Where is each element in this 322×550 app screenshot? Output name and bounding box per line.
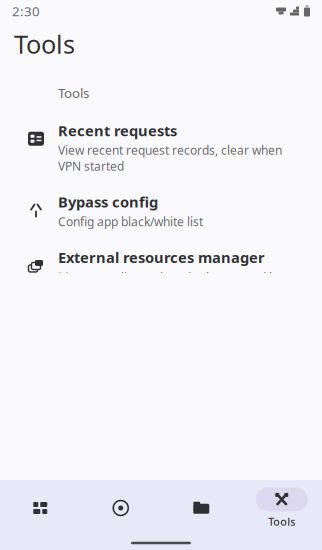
button[interactable]: External resources manager — [0, 238, 322, 310]
staticText: Bypass config — [58, 192, 158, 212]
button[interactable]: Tab — [0, 480, 80, 536]
staticText: Settings — [58, 504, 117, 524]
staticText: 2:30 — [12, 2, 40, 20]
staticText: Manage policy path and rule set used by … — [58, 269, 282, 301]
staticText: Tools — [58, 84, 89, 102]
staticText: Others — [58, 468, 101, 485]
staticText: External resources manager — [58, 247, 265, 267]
button[interactable]: Settings — [0, 495, 322, 535]
button[interactable]: Recent requests — [0, 112, 322, 183]
staticText: Config app black/white list — [58, 213, 203, 229]
staticText: Tools — [268, 514, 295, 529]
button[interactable]: Tab — [161, 480, 241, 536]
staticText: Recent requests — [58, 121, 177, 140]
button[interactable]: Bypass config — [0, 183, 322, 238]
button[interactable]: Tools — [241, 480, 322, 536]
button[interactable]: Tab — [80, 480, 161, 536]
staticText: Tools — [14, 27, 75, 61]
staticText: View recent request records, clear when … — [58, 142, 282, 174]
